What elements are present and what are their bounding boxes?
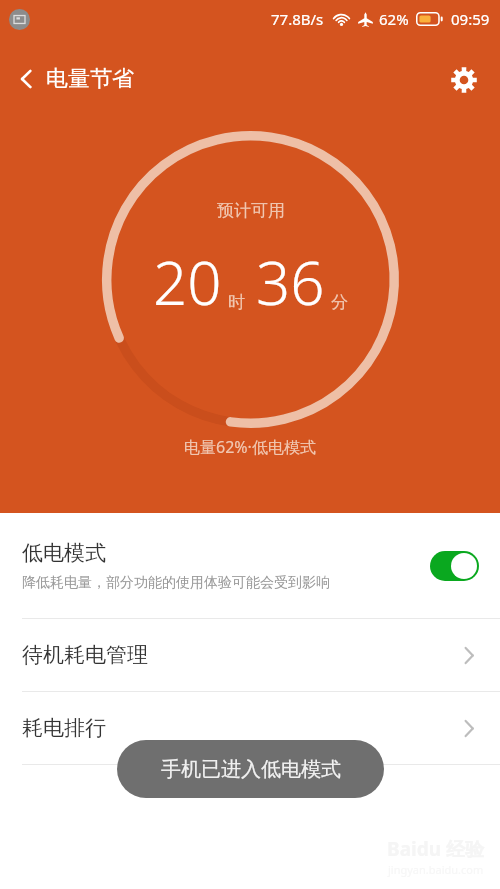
staticText: 77.8B/s	[271, 9, 324, 29]
staticText: 20	[153, 241, 222, 323]
staticText: Baidu 经验	[387, 836, 484, 862]
button[interactable]: 耗电排行	[0, 692, 500, 764]
staticText: 36	[256, 241, 325, 323]
staticText: 09:59	[451, 9, 490, 29]
staticText: 手机已进入低电模式	[161, 757, 341, 782]
button[interactable]: Back	[12, 58, 142, 100]
staticText: 62%	[379, 9, 409, 29]
button[interactable]: 低电模式	[0, 513, 500, 618]
staticText: 低电模式	[22, 540, 106, 566]
staticText: 降低耗电量，部分功能的使用体验可能会受到影响	[22, 574, 330, 592]
staticText: 时	[228, 292, 245, 313]
staticText: 耗电排行	[22, 715, 106, 741]
button[interactable]: 低电模式开关	[430, 551, 479, 581]
staticText: 待机耗电管理	[22, 642, 148, 668]
other: Back	[20, 68, 33, 90]
staticText: 电量节省	[46, 65, 134, 93]
staticText: 分	[331, 292, 348, 313]
button[interactable]: Settings	[446, 62, 482, 98]
staticText: 预计可用	[217, 200, 285, 221]
button[interactable]: 待机耗电管理	[0, 619, 500, 691]
staticText: 电量62%·低电模式	[184, 436, 316, 458]
